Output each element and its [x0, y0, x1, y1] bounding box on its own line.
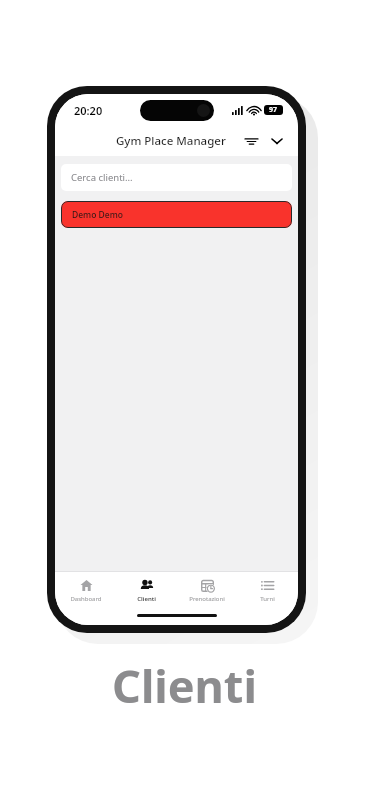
- button[interactable]: Cerca clienti...: [61, 164, 292, 191]
- staticText: 20:20: [74, 103, 103, 118]
- staticText: Cerca clienti...: [71, 171, 133, 184]
- staticText: Clienti: [112, 655, 257, 716]
- button[interactable]: Expand menu: [264, 128, 290, 154]
- staticText: 97: [269, 105, 278, 115]
- staticText: Dashboard: [70, 595, 102, 603]
- button[interactable]: Dashboard: [56, 572, 116, 609]
- button[interactable]: Prenotazioni: [177, 572, 237, 609]
- staticText: Demo Demo: [72, 209, 123, 221]
- button[interactable]: Turni: [237, 572, 297, 609]
- button[interactable]: Demo Demo: [61, 201, 292, 228]
- button[interactable]: Filter: [238, 128, 264, 154]
- staticText: Turni: [260, 595, 275, 603]
- staticText: Gym Place Manager: [116, 133, 226, 149]
- button[interactable]: Clienti: [116, 572, 176, 609]
- staticText: Prenotazioni: [189, 595, 225, 603]
- staticText: Clienti: [137, 595, 156, 603]
